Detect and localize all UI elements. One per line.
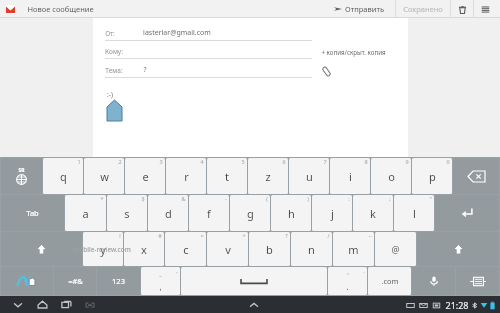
button[interactable]: Shift bbox=[1, 232, 82, 266]
button[interactable]: ? bbox=[249, 232, 290, 266]
staticText: ? bbox=[285, 232, 288, 239]
staticText: " bbox=[429, 195, 432, 202]
staticText: : bbox=[348, 195, 350, 202]
button[interactable]: Hide keyboard bbox=[242, 296, 266, 313]
staticText: Тема: bbox=[105, 66, 123, 75]
button[interactable]: Gesture input bbox=[1, 267, 53, 295]
button[interactable]: 8 bbox=[330, 158, 370, 194]
staticText: 0 bbox=[446, 158, 450, 165]
staticText: x bbox=[141, 242, 147, 257]
button[interactable]: Gmail bbox=[4, 3, 17, 16]
staticText: , bbox=[159, 281, 162, 292]
staticText: :-) bbox=[107, 90, 113, 99]
staticText: / bbox=[327, 232, 330, 239]
staticText: 2 bbox=[118, 158, 122, 165]
staticText: p bbox=[429, 169, 436, 184]
button[interactable]: More options bbox=[474, 0, 496, 18]
button[interactable]: Backspace bbox=[453, 158, 499, 194]
button[interactable]: ! bbox=[83, 232, 123, 266]
staticText: - bbox=[225, 195, 227, 202]
button[interactable]: ( bbox=[230, 195, 270, 231]
button[interactable]: 9 bbox=[371, 158, 411, 194]
button[interactable]: Home bbox=[30, 296, 54, 313]
button[interactable]: " bbox=[394, 195, 434, 231]
button[interactable]: ~ bbox=[333, 232, 374, 266]
staticText: - bbox=[159, 271, 162, 281]
staticText: t bbox=[225, 169, 229, 184]
button[interactable]: @ bbox=[375, 232, 416, 266]
button[interactable]: 123 bbox=[97, 267, 140, 295]
staticText: ! bbox=[119, 232, 121, 239]
button[interactable]: 2 bbox=[84, 158, 124, 194]
button[interactable]: 7 bbox=[289, 158, 329, 194]
staticText: + копия/скрыт. копия bbox=[321, 48, 386, 56]
button[interactable]: , bbox=[141, 267, 180, 295]
staticText: o bbox=[388, 169, 395, 184]
staticText: # bbox=[158, 232, 162, 239]
staticText: j bbox=[331, 206, 334, 221]
button[interactable]: 0 bbox=[412, 158, 452, 194]
staticText: u bbox=[306, 169, 313, 184]
staticText: s bbox=[124, 206, 130, 221]
staticText: r bbox=[184, 169, 189, 184]
staticText: & bbox=[181, 195, 186, 202]
staticText: * bbox=[100, 195, 104, 202]
button[interactable]: & bbox=[148, 195, 188, 231]
staticText: h bbox=[288, 206, 295, 221]
button[interactable]: - bbox=[189, 195, 229, 231]
staticText: b bbox=[266, 242, 273, 257]
button[interactable]: ) bbox=[271, 195, 311, 231]
button[interactable]: Back bbox=[6, 296, 30, 313]
staticText: lasterlar@gmail.com bbox=[143, 28, 211, 38]
button[interactable]: 5 bbox=[207, 158, 247, 194]
button[interactable]: . bbox=[328, 267, 367, 295]
staticText: 123 bbox=[112, 276, 125, 286]
button[interactable]: + копия/скрыт. копия bbox=[320, 47, 387, 57]
staticText: ; bbox=[389, 195, 391, 202]
staticText: k bbox=[370, 206, 376, 221]
button[interactable]: / bbox=[291, 232, 332, 266]
staticText: a bbox=[82, 206, 89, 221]
button[interactable]: + bbox=[207, 232, 248, 266]
button[interactable]: Attach file bbox=[320, 65, 333, 78]
button[interactable]: Change language bbox=[1, 158, 42, 194]
button[interactable]: # bbox=[124, 232, 164, 266]
staticText: = bbox=[200, 232, 204, 239]
button[interactable]: : bbox=[312, 195, 352, 231]
staticText: Кому: bbox=[105, 47, 123, 56]
button[interactable]: Space bbox=[181, 267, 327, 295]
button[interactable]: Screenshot bbox=[78, 296, 102, 313]
button[interactable]: $ bbox=[107, 195, 147, 231]
button[interactable]: = bbox=[165, 232, 206, 266]
staticText: Отправить bbox=[345, 4, 384, 14]
staticText: i bbox=[349, 169, 352, 184]
button[interactable]: =#& bbox=[54, 267, 96, 295]
staticText: . bbox=[346, 281, 349, 292]
button[interactable]: Recent apps bbox=[54, 296, 78, 313]
staticText: 3 bbox=[159, 158, 163, 165]
staticText: n bbox=[308, 242, 315, 257]
button[interactable]: Voice input bbox=[412, 267, 455, 295]
staticText: w bbox=[100, 169, 109, 184]
staticText: ( bbox=[266, 195, 268, 202]
button[interactable]: Отправить bbox=[331, 4, 387, 14]
staticText: 21:28 bbox=[445, 299, 469, 311]
button[interactable]: Shift bbox=[417, 232, 499, 266]
button[interactable]: Keyboard settings bbox=[456, 267, 499, 295]
button[interactable]: Enter bbox=[435, 195, 499, 231]
button[interactable]: 4 bbox=[166, 158, 206, 194]
staticText: От: bbox=[105, 29, 115, 38]
button[interactable]: Delete bbox=[451, 0, 473, 18]
staticText: ) bbox=[307, 195, 309, 202]
button[interactable]: * bbox=[65, 195, 106, 231]
staticText: 1 bbox=[77, 158, 81, 165]
button[interactable]: 1 bbox=[43, 158, 83, 194]
staticText: z bbox=[265, 169, 271, 184]
button[interactable]: 3 bbox=[125, 158, 165, 194]
button[interactable]: .com bbox=[368, 267, 411, 295]
staticText: 9 bbox=[405, 158, 409, 165]
button[interactable]: Tab bbox=[1, 195, 64, 231]
button[interactable]: ; bbox=[353, 195, 393, 231]
button[interactable]: 6 bbox=[248, 158, 288, 194]
staticText: l bbox=[413, 206, 416, 221]
